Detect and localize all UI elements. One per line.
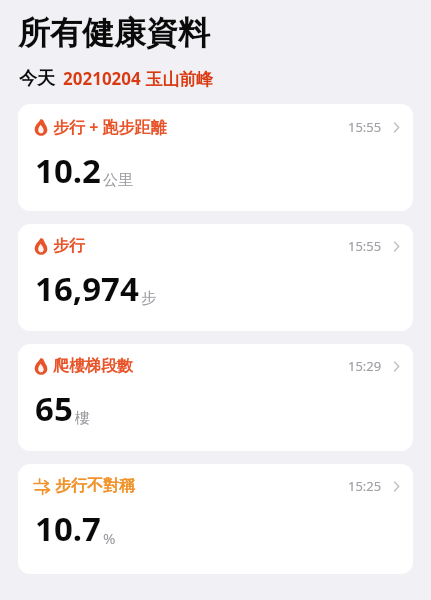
staticText: 20210204 玉山前峰 — [63, 67, 214, 90]
button[interactable]: Activity — [18, 104, 413, 211]
other: Open 步行 — [392, 239, 401, 254]
button[interactable]: Asymmetry — [18, 464, 413, 574]
other: Open 步行 + 跑步距離 — [392, 120, 401, 135]
button[interactable]: Activity — [18, 224, 413, 331]
staticText: 步 — [141, 289, 156, 308]
staticText: 步行 — [53, 236, 85, 256]
staticText: 樓 — [75, 409, 90, 428]
staticText: % — [103, 528, 116, 548]
staticText: 16,974 — [35, 266, 139, 311]
other: Activity — [32, 358, 49, 375]
staticText: 15:55 — [348, 237, 382, 255]
button[interactable]: Activity — [18, 344, 413, 451]
other: Open 爬樓梯段數 — [392, 359, 401, 374]
staticText: 10.2 — [35, 148, 101, 193]
other: Activity — [32, 238, 49, 255]
staticText: 65 — [35, 386, 73, 431]
staticText: 10.7 — [35, 506, 101, 551]
staticText: 公里 — [103, 171, 133, 190]
other: Open 步行不對稱 — [392, 479, 401, 494]
staticText: 步行不對稱 — [55, 476, 135, 496]
staticText: 今天 — [19, 67, 55, 90]
other: Activity — [32, 119, 49, 136]
staticText: 步行 + 跑步距離 — [53, 116, 167, 138]
staticText: 爬樓梯段數 — [53, 356, 133, 376]
staticText: 15:25 — [348, 477, 382, 495]
staticText: 15:29 — [348, 357, 382, 375]
staticText: 所有健康資料 — [18, 13, 210, 53]
other: Asymmetry — [32, 477, 51, 496]
staticText: 15:55 — [348, 118, 382, 136]
